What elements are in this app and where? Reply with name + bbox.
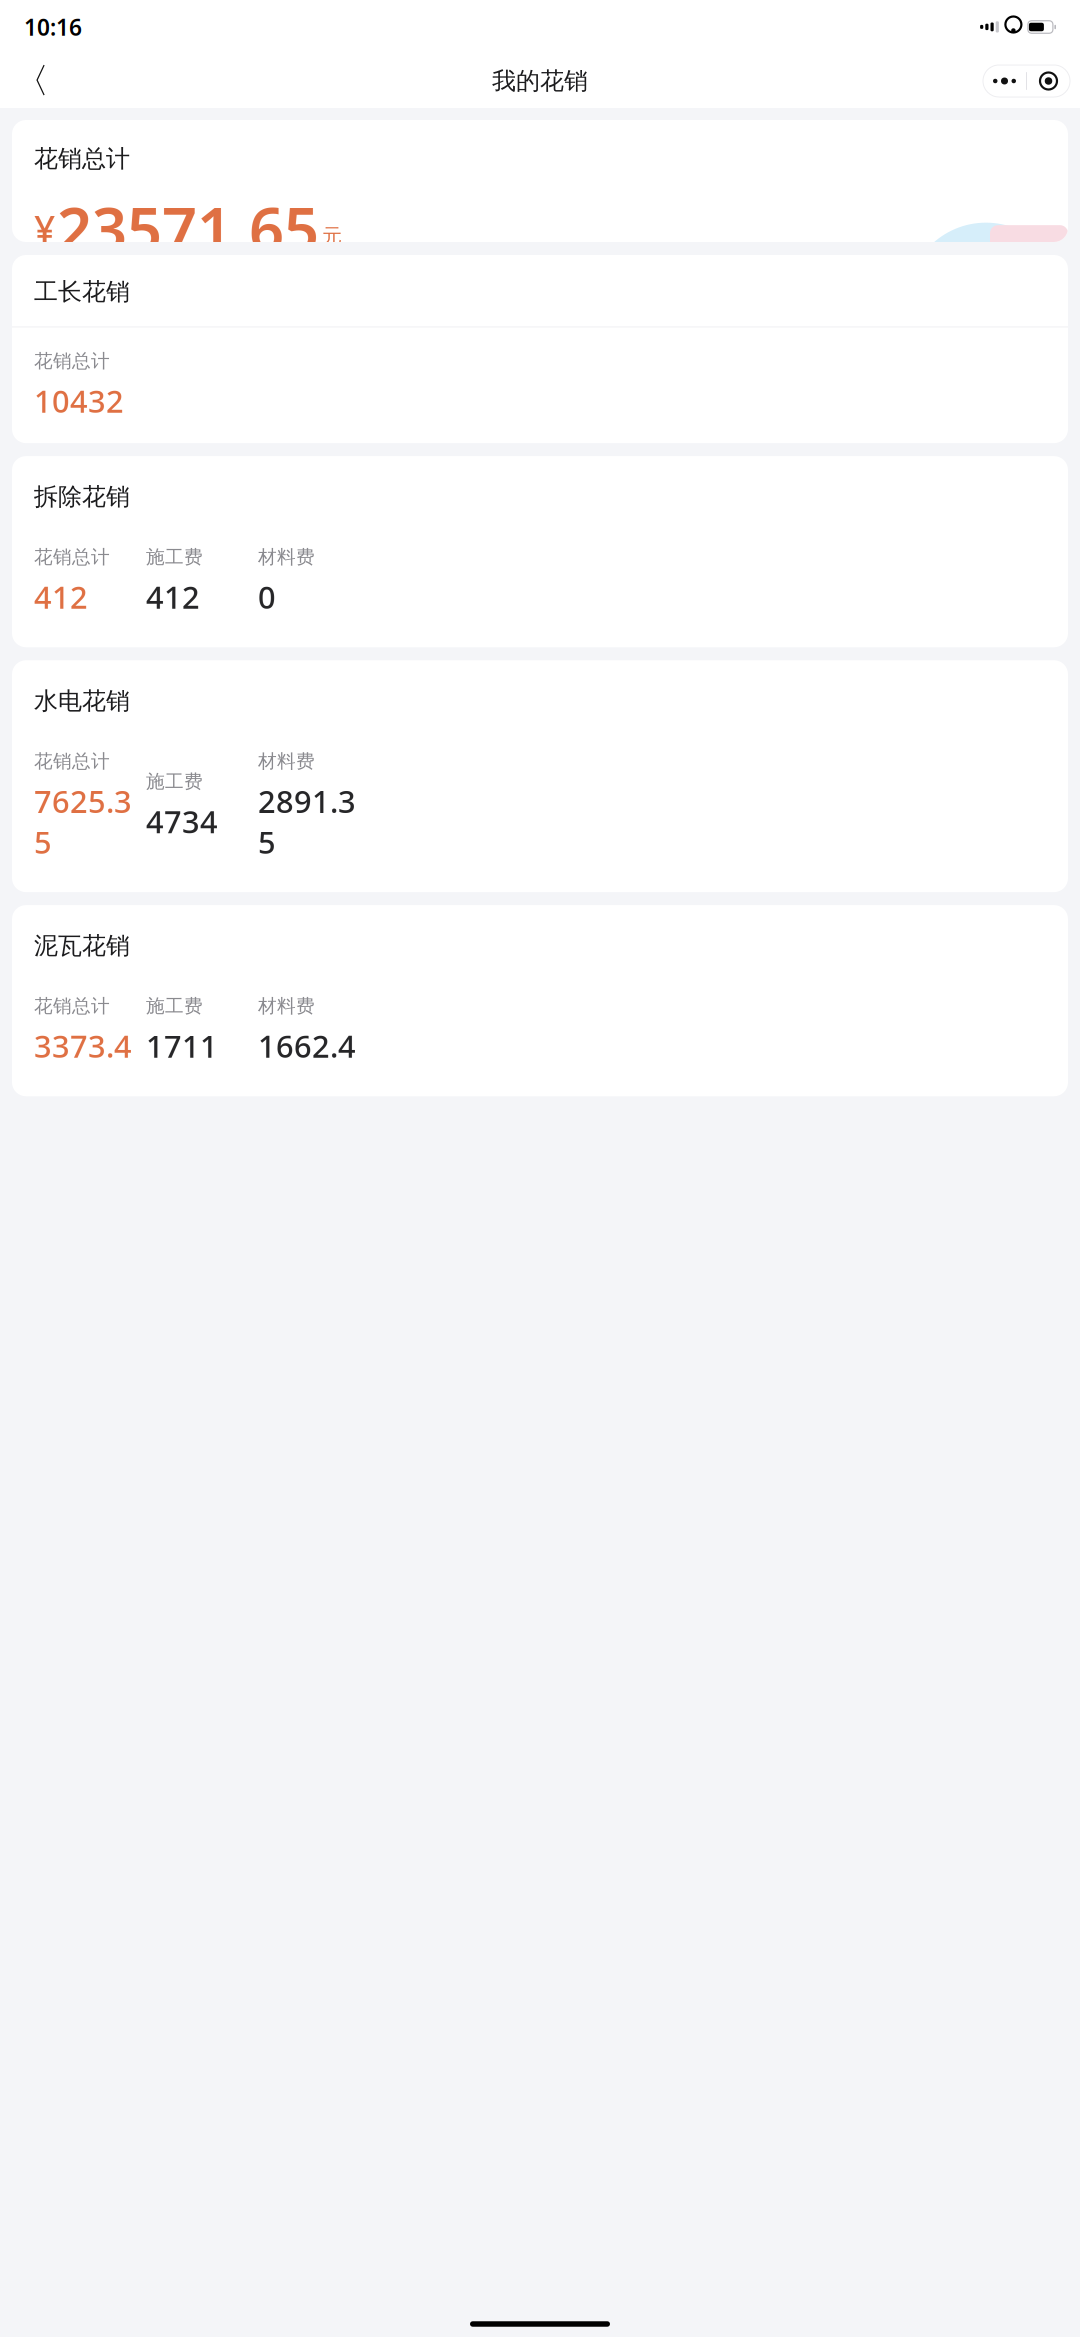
staticText: 施工费 [146, 770, 203, 793]
staticText: 材料费 [258, 546, 315, 568]
staticText: 1662.4 [258, 1025, 356, 1066]
staticText: 花销总计 [34, 349, 110, 372]
button[interactable]: 工长花销 [12, 255, 1068, 443]
staticText: 17289 [34, 350, 124, 391]
staticText: 材料费 [258, 995, 315, 1017]
staticText: 施工费 [146, 995, 203, 1017]
staticText: 施工费 [146, 546, 203, 568]
button[interactable]: 拆除花销 [12, 456, 1068, 647]
button[interactable]: 更多 [983, 65, 1026, 97]
staticText: 10432 [34, 380, 124, 421]
staticText: 工长花销 [34, 277, 130, 306]
staticText: 3373.4 [34, 1025, 132, 1066]
staticText: 2891.35 [258, 781, 356, 862]
staticText: 花销总计 [34, 750, 110, 773]
staticText: 水电花销 [34, 686, 130, 716]
staticText: 泥瓦花销 [34, 931, 130, 961]
button[interactable]: 水电花销 [12, 660, 1068, 892]
button[interactable]: 胶囊菜单 [1027, 65, 1070, 97]
staticText: 花销总计 [34, 144, 130, 173]
staticText: 拆除花销 [34, 482, 130, 512]
staticText: 我的花销 [492, 66, 588, 96]
staticText: 0 [258, 576, 276, 617]
staticText: 412 [34, 576, 88, 617]
staticText: 1711 [146, 1025, 218, 1066]
button[interactable]: 返回 [10, 59, 54, 103]
staticText: 10:16 [24, 12, 82, 42]
button[interactable]: 花销总计 [12, 120, 1068, 242]
staticText: 花销总计 [34, 546, 110, 568]
staticText: 23571.65 [57, 187, 319, 269]
staticText: 4734 [146, 801, 218, 842]
button[interactable]: 泥瓦花销 [12, 905, 1068, 1096]
staticText: ¥ [34, 203, 55, 253]
staticText: 〈 [14, 60, 49, 102]
staticText: 412 [146, 576, 200, 617]
staticText: 花销总计 [34, 995, 110, 1017]
staticText: 7625.35 [34, 781, 132, 862]
staticText: 材料费 [258, 750, 315, 773]
staticText: 元 [322, 224, 342, 248]
